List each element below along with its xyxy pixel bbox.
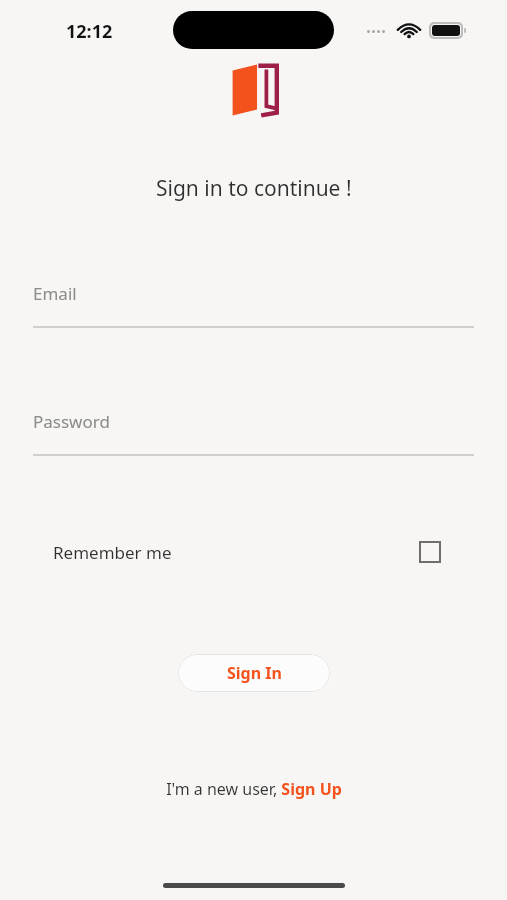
other: Remember me checkbox (419, 541, 441, 563)
staticText: Password (33, 410, 110, 433)
staticText: Remember me (53, 541, 172, 564)
button[interactable]: Sign In (178, 654, 330, 692)
button[interactable]: Remember me (53, 534, 441, 570)
staticText: Sign in to continue ! (156, 174, 352, 203)
button[interactable]: Email (33, 282, 474, 328)
staticText: I'm a new user, Sign Up (166, 778, 342, 800)
staticText: Email (33, 282, 77, 305)
button[interactable]: I'm a new user, Sign Up (166, 778, 342, 800)
staticText: 12:12 (66, 19, 113, 44)
staticText: Sign In (227, 662, 282, 684)
button[interactable]: Password (33, 410, 474, 456)
